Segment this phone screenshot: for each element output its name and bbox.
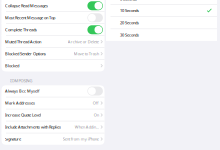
button[interactable]: 20 Seconds — [106, 17, 217, 29]
button[interactable]: Collapse Read Messages — [1, 0, 104, 11]
staticText: Archive or Delete — [68, 39, 99, 44]
staticText: Collapse Read Messages — [5, 3, 48, 8]
button[interactable]: Muted Thread Action — [1, 36, 104, 47]
button[interactable]: Complete Threads — [1, 24, 104, 35]
button[interactable]: Include Attachments with Replies — [1, 121, 104, 133]
staticText: Include Attachments with Replies — [5, 124, 61, 130]
button[interactable]: Blocked Sender Options — [1, 48, 104, 59]
staticText: 30 Seconds — [120, 32, 139, 38]
staticText: Muted Thread Action — [5, 39, 41, 44]
staticText: Signature — [5, 136, 21, 142]
button[interactable]: Mark Addresses — [1, 97, 104, 109]
button[interactable]: 30 Seconds — [106, 29, 217, 41]
staticText: Blocked — [5, 63, 19, 68]
staticText: When Addin… — [75, 124, 99, 130]
button[interactable]: Most Recent Message on Top — [1, 12, 104, 23]
button[interactable]: Blocked — [1, 60, 104, 71]
button[interactable]: Signature — [1, 133, 104, 145]
staticText: Off — [93, 100, 99, 106]
staticText: Increase Quote Level — [5, 112, 41, 118]
button[interactable]: 10 Seconds — [106, 4, 217, 16]
staticText: Complete Threads — [5, 27, 37, 32]
staticText: 20 Seconds — [120, 20, 139, 25]
staticText: Sent from my iPhone — [63, 136, 99, 142]
staticText: On — [94, 112, 99, 118]
staticText: 5 Seconds — [120, 0, 137, 2]
button[interactable]: Always Bcc Myself — [1, 85, 104, 97]
button[interactable]: Increase Quote Level — [1, 109, 104, 121]
staticText: COMPOSING — [9, 78, 32, 83]
staticText: Most Recent Message on Top — [5, 15, 55, 20]
staticText: Mark Addresses — [5, 100, 35, 106]
staticText: 10 Seconds — [120, 8, 139, 13]
staticText: Move to Trash — [74, 51, 99, 56]
staticText: Blocked Sender Options — [5, 51, 46, 56]
staticText: Always Bcc Myself — [5, 88, 39, 94]
